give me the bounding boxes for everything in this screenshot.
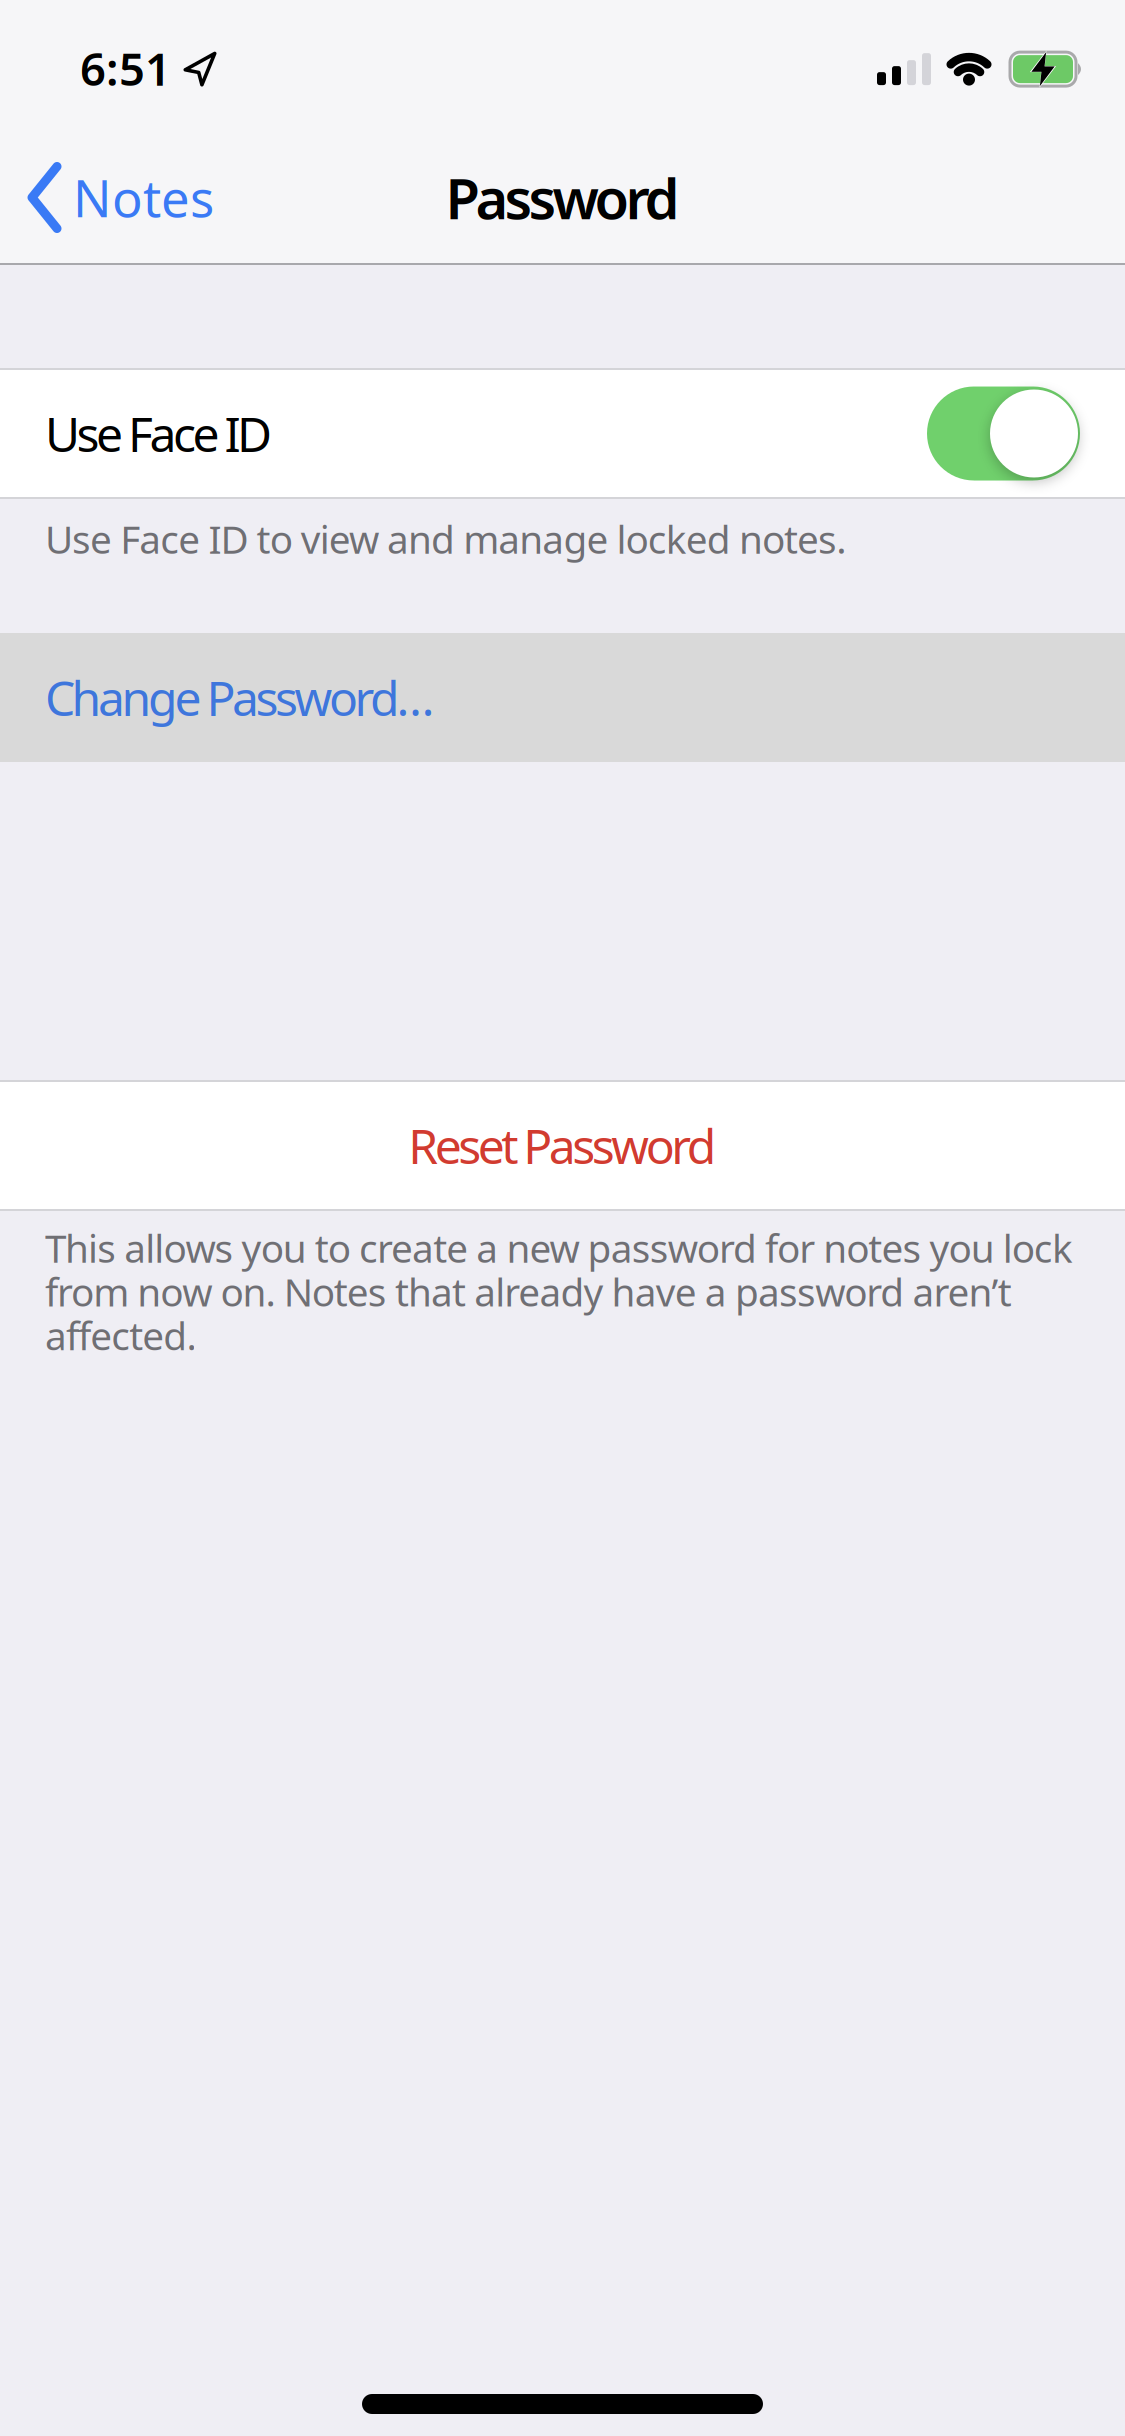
button[interactable]: Back to Notes xyxy=(0,164,214,231)
staticText: 6:51 xyxy=(80,38,171,98)
staticText: Reset Password xyxy=(408,1114,717,1177)
staticText: Change Password… xyxy=(45,666,434,729)
staticText: Notes xyxy=(73,164,214,231)
staticText: This allows you to create a new password… xyxy=(45,1222,1073,1361)
staticText: Use Face ID xyxy=(45,402,272,465)
staticText: Password xyxy=(445,160,679,235)
staticText: Use Face ID to view and manage locked no… xyxy=(45,513,846,564)
button[interactable]: Change Password… xyxy=(0,633,1125,762)
button[interactable]: Use Face ID xyxy=(927,386,1080,480)
button[interactable]: Reset Password xyxy=(0,1080,1125,1211)
